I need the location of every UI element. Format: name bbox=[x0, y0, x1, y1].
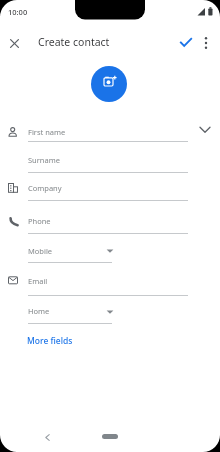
staticText: More fields bbox=[27, 335, 73, 347]
staticText: Surname bbox=[28, 155, 60, 165]
button[interactable] bbox=[26, 301, 116, 322]
staticText: Home bbox=[28, 306, 50, 316]
staticText: 10:00 bbox=[8, 7, 28, 17]
button[interactable] bbox=[102, 434, 118, 439]
button[interactable]: More fields bbox=[24, 332, 84, 350]
button[interactable] bbox=[199, 126, 211, 134]
button[interactable] bbox=[26, 241, 116, 262]
button[interactable] bbox=[26, 150, 190, 171]
staticText: Company bbox=[28, 183, 62, 193]
button[interactable] bbox=[26, 271, 190, 292]
button[interactable] bbox=[26, 178, 190, 199]
button[interactable] bbox=[4, 36, 24, 50]
button[interactable] bbox=[91, 66, 127, 102]
button[interactable] bbox=[177, 34, 195, 50]
button[interactable] bbox=[26, 122, 190, 143]
staticText: Phone bbox=[28, 216, 51, 226]
button[interactable] bbox=[199, 35, 213, 51]
button[interactable] bbox=[26, 211, 190, 232]
staticText: Email bbox=[28, 276, 48, 286]
staticText: Mobile bbox=[28, 246, 53, 256]
button[interactable] bbox=[38, 428, 56, 446]
staticText: First name bbox=[28, 127, 66, 137]
staticText: Create contact bbox=[38, 35, 110, 49]
